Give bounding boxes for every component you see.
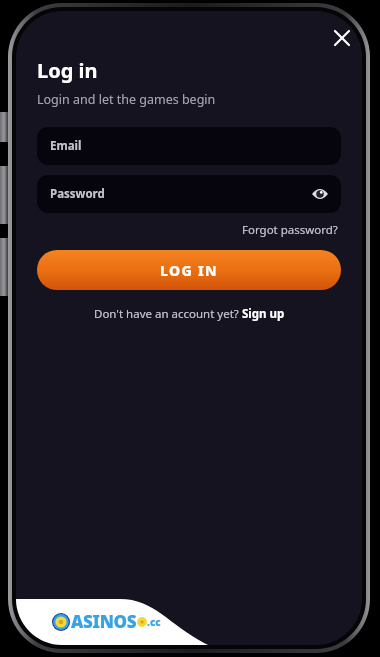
staticText: Sign up [242, 306, 285, 322]
staticText: ASINOS [71, 610, 137, 633]
button[interactable]: Password [37, 175, 341, 213]
staticText: Login and let the games begin [37, 91, 216, 108]
staticText: Email [50, 138, 82, 154]
button[interactable]: Don't have an account yet? [37, 303, 341, 325]
staticText: .cc [147, 615, 161, 629]
staticText: Forgot password? [242, 222, 338, 238]
staticText: Log in [37, 57, 98, 84]
button[interactable]: Show password [307, 181, 333, 207]
button[interactable]: Forgot password? [239, 219, 341, 241]
button[interactable]: Close [326, 22, 358, 54]
staticText: LOG IN [160, 261, 218, 280]
button[interactable]: LOG IN [37, 250, 341, 290]
staticText: Password [50, 186, 105, 202]
button[interactable]: Email [37, 127, 341, 165]
staticText: Don't have an account yet? [94, 306, 242, 322]
